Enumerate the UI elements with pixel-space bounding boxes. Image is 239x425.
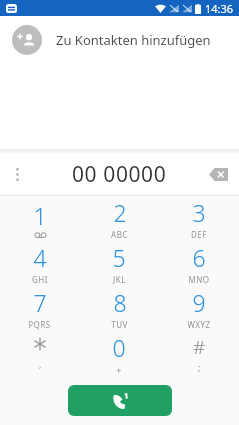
button[interactable]: 5 [79, 241, 159, 286]
button[interactable]: 0 [79, 331, 159, 376]
button[interactable]: 9 [159, 286, 239, 331]
button[interactable]: , [0, 331, 79, 376]
staticText: + [116, 364, 122, 376]
staticText: 5 [112, 242, 126, 273]
staticText: 8 [113, 287, 127, 318]
staticText: 9 [192, 287, 206, 318]
staticText: JKL [113, 274, 126, 285]
staticText: WXYZ [187, 319, 211, 330]
staticText: ABC [111, 229, 128, 240]
staticText: 14:36 [205, 1, 234, 16]
staticText: DEF [191, 229, 207, 240]
staticText: TUV [111, 319, 128, 330]
button[interactable]: More options [0, 157, 34, 191]
button[interactable]: 1 [0, 196, 79, 241]
staticText: 6 [192, 242, 206, 273]
staticText: 4 [33, 242, 47, 273]
staticText: GHI [32, 274, 48, 285]
button[interactable]: 3 [159, 196, 239, 241]
staticText: MNO [188, 274, 210, 285]
staticText: PQRS [28, 319, 51, 330]
button[interactable]: 2 [79, 196, 159, 241]
staticText: # [193, 334, 206, 360]
staticText: 3 [192, 197, 206, 228]
button[interactable]: 4 [0, 241, 79, 286]
button[interactable]: 6 [159, 241, 239, 286]
button[interactable]: # [159, 331, 239, 376]
staticText: 00 00000 [72, 160, 167, 189]
button[interactable]: Zu Kontakten hinzufügen [0, 16, 239, 64]
staticText: 1 [33, 200, 47, 231]
staticText: , [39, 358, 42, 370]
button[interactable]: Backspace [203, 159, 233, 189]
staticText: Zu Kontakten hinzufügen [56, 31, 211, 49]
staticText: 2 [113, 197, 127, 228]
staticText: 0 [112, 332, 126, 363]
staticText: 7 [33, 287, 47, 318]
button[interactable]: 7 [0, 286, 79, 331]
button[interactable]: 8 [79, 286, 159, 331]
button[interactable]: Call [68, 385, 172, 416]
staticText: ; [198, 361, 201, 373]
